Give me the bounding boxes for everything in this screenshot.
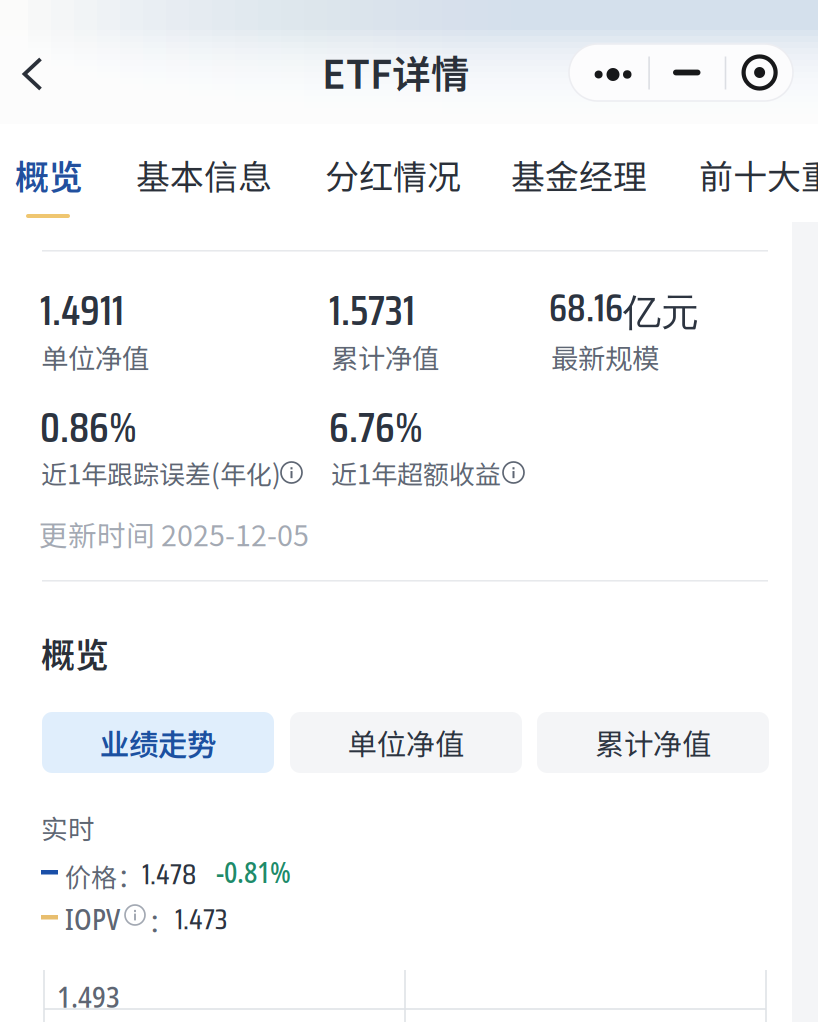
staticText: 1.473: [175, 896, 227, 942]
staticText: 基本信息: [136, 150, 272, 199]
button[interactable]: 基本信息: [126, 150, 282, 242]
button[interactable]: Back: [0, 28, 66, 120]
staticText: 业绩走势: [100, 721, 216, 764]
staticText: 单位净值: [41, 337, 149, 377]
button[interactable]: Minimize: [650, 44, 726, 101]
staticText: 累计净值: [595, 721, 711, 764]
staticText: 68.16亿元: [549, 278, 699, 338]
staticText: IOPV: [65, 900, 120, 938]
staticText: 6.76%: [329, 395, 423, 460]
staticText: 价格：: [65, 857, 143, 895]
button[interactable]: 分红情况: [315, 150, 471, 242]
staticText: 更新时间 2025-12-05: [39, 513, 309, 554]
staticText: 1.478: [142, 851, 196, 897]
staticText: 1.493: [57, 977, 120, 1016]
staticText: 实时: [41, 808, 95, 847]
staticText: 概览: [15, 150, 83, 199]
button[interactable]: 前十大重: [689, 150, 818, 242]
staticText: 累计净值: [331, 337, 439, 377]
staticText: ：: [148, 902, 174, 940]
staticText: 概览: [41, 628, 109, 677]
button[interactable]: Close: [727, 44, 793, 101]
staticText: -0.81%: [216, 853, 291, 891]
button[interactable]: 业绩走势: [42, 712, 274, 773]
staticText: 前十大重: [699, 150, 818, 199]
staticText: 近1年超额收益: [331, 454, 501, 492]
button[interactable]: 累计净值: [537, 712, 769, 773]
staticText: 单位净值: [348, 721, 464, 764]
button[interactable]: 概览: [5, 150, 95, 242]
staticText: 1.4911: [40, 278, 124, 343]
staticText: 近1年跟踪误差(年化): [41, 454, 281, 492]
staticText: 分红情况: [325, 150, 461, 199]
staticText: 1.5731: [329, 278, 415, 343]
staticText: 0.86%: [40, 395, 137, 460]
staticText: 最新规模: [551, 337, 659, 377]
staticText: ETF详情: [322, 44, 470, 100]
button[interactable]: 单位净值: [290, 712, 522, 773]
button[interactable]: More: [569, 44, 648, 101]
staticText: 基金经理: [511, 150, 647, 199]
button[interactable]: 基金经理: [501, 150, 657, 242]
